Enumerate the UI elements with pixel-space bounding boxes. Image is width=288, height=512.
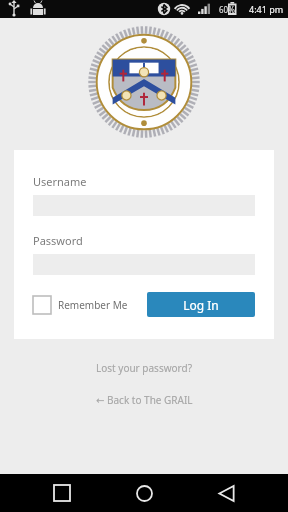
- button[interactable]: Log In: [147, 292, 255, 317]
- staticText: Remember Me: [58, 298, 128, 312]
- staticText: Password: [33, 233, 83, 248]
- button[interactable]: Lost your password?: [86, 357, 203, 379]
- button[interactable]: Back: [206, 474, 246, 512]
- staticText: 60%: [219, 4, 235, 15]
- button[interactable]: Home: [124, 474, 164, 512]
- button[interactable]: Remember Me: [33, 296, 128, 314]
- button[interactable]: ← Back to The GRAIL: [86, 389, 203, 411]
- staticText: 4:41 pm: [249, 3, 284, 15]
- staticText: Username: [33, 174, 87, 189]
- button[interactable]: Recent apps: [42, 474, 82, 512]
- staticText: Log In: [183, 297, 219, 313]
